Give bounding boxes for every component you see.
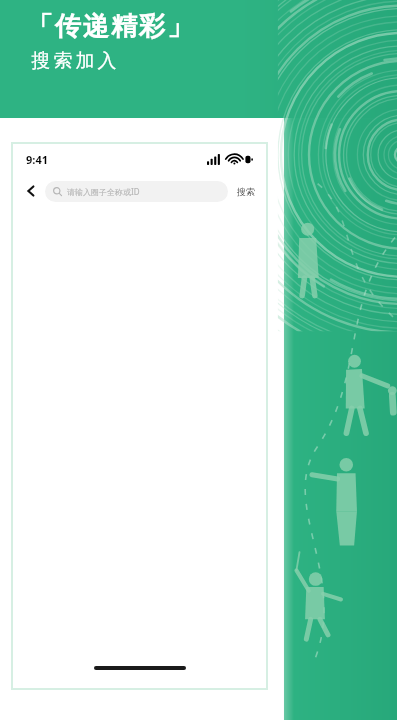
staticText: 请输入圈子全称或ID [67,186,140,197]
staticText: 「传递精彩」 [26,10,194,43]
button[interactable]: 返回 [20,180,42,202]
button[interactable]: 请输入圈子全称或ID [45,181,228,202]
staticText: 9:41 [26,152,48,167]
button[interactable]: 搜索 [235,180,257,202]
staticText: 搜索 [237,186,255,197]
staticText: 搜索加入 [30,49,118,73]
